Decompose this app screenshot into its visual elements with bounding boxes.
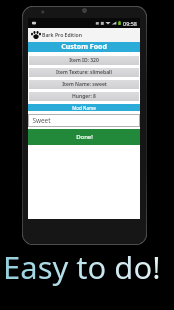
staticText: Item Texture: slimeball [56, 69, 112, 76]
button[interactable]: Item Name: sweet [29, 80, 139, 89]
button[interactable]: Sweet [28, 114, 140, 127]
staticText: Done! [76, 133, 93, 141]
button[interactable]: Item Texture: slimeball [29, 68, 139, 77]
button[interactable]: Done! [28, 129, 140, 145]
staticText: Custom Food [61, 42, 107, 52]
staticText: Item ID: 320 [69, 57, 99, 64]
staticText: Bark Pro Edition [42, 32, 82, 39]
staticText: Mod Name [72, 105, 96, 111]
staticText: Sweet [32, 116, 51, 125]
staticText: Hunger: 8 [72, 93, 96, 100]
staticText: Easy to do! [3, 246, 161, 288]
staticText: 09:58 [123, 20, 137, 27]
button[interactable]: Hunger: 8 [29, 92, 139, 101]
button[interactable]: Mod Name [28, 104, 140, 111]
button[interactable]: Item ID: 320 [29, 56, 139, 65]
staticText: Item Name: sweet [62, 81, 107, 88]
